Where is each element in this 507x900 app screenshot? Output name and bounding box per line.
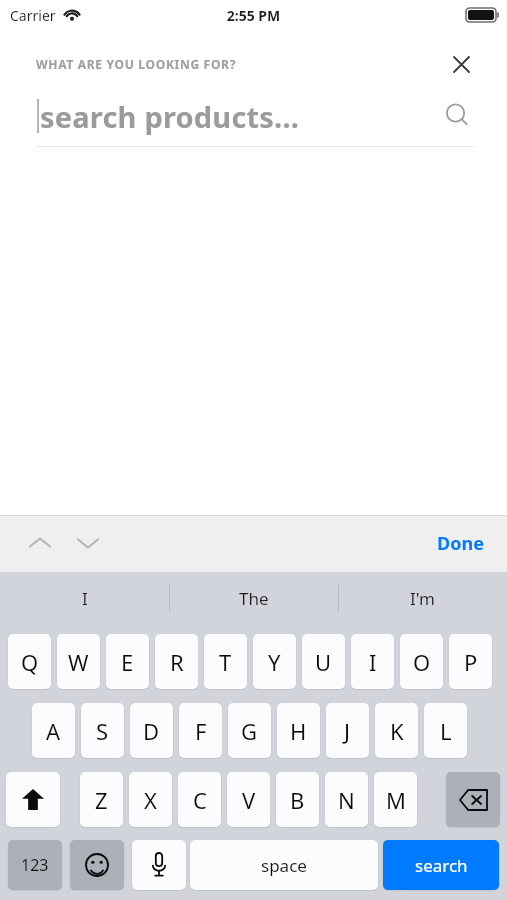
button[interactable]: I bbox=[0, 572, 169, 625]
staticText: E bbox=[121, 647, 134, 677]
button[interactable]: Next field bbox=[68, 523, 108, 563]
staticText: V bbox=[242, 785, 256, 815]
button[interactable]: F bbox=[179, 703, 222, 758]
button[interactable]: Close bbox=[443, 46, 479, 82]
staticText: T bbox=[219, 647, 232, 677]
button[interactable]: Search bbox=[438, 96, 476, 134]
button[interactable]: Backspace bbox=[446, 772, 500, 827]
button[interactable]: Emoji bbox=[70, 840, 124, 890]
button[interactable]: search bbox=[383, 840, 499, 890]
button[interactable]: S bbox=[81, 703, 124, 758]
button[interactable]: X bbox=[129, 772, 172, 827]
staticText: Carrier bbox=[10, 6, 56, 25]
button[interactable]: O bbox=[400, 634, 443, 689]
staticText: I'm bbox=[410, 587, 435, 610]
staticText: search products... bbox=[40, 97, 300, 136]
button[interactable]: T bbox=[204, 634, 247, 689]
staticText: O bbox=[413, 647, 431, 677]
staticText: W bbox=[68, 647, 89, 677]
staticText: Q bbox=[21, 647, 39, 677]
button[interactable]: I'm bbox=[338, 572, 507, 625]
staticText: N bbox=[338, 785, 355, 815]
button[interactable]: Previous field bbox=[20, 523, 60, 563]
button[interactable]: J bbox=[326, 703, 369, 758]
button[interactable]: A bbox=[32, 703, 75, 758]
staticText: R bbox=[170, 647, 184, 677]
button[interactable]: The bbox=[169, 572, 338, 625]
staticText: Done bbox=[437, 531, 484, 556]
button[interactable]: H bbox=[277, 703, 320, 758]
button[interactable]: space bbox=[190, 840, 378, 890]
staticText: D bbox=[143, 716, 160, 746]
staticText: I bbox=[369, 647, 377, 677]
staticText: A bbox=[46, 716, 61, 746]
staticText: X bbox=[144, 785, 157, 815]
button[interactable]: R bbox=[155, 634, 198, 689]
staticText: I bbox=[82, 587, 88, 610]
staticText: 2:55 PM bbox=[0, 6, 507, 25]
button[interactable]: Done bbox=[424, 523, 496, 563]
staticText: B bbox=[290, 785, 305, 815]
button[interactable]: U bbox=[302, 634, 345, 689]
staticText: H bbox=[290, 716, 307, 746]
staticText: Y bbox=[268, 647, 281, 677]
staticText: U bbox=[315, 647, 332, 677]
button[interactable]: V bbox=[227, 772, 270, 827]
button[interactable]: Dictation bbox=[132, 840, 186, 890]
button[interactable]: Y bbox=[253, 634, 296, 689]
staticText: G bbox=[241, 716, 258, 746]
button[interactable]: D bbox=[130, 703, 173, 758]
button[interactable]: N bbox=[325, 772, 368, 827]
button[interactable]: Q bbox=[8, 634, 51, 689]
button[interactable]: E bbox=[106, 634, 149, 689]
button[interactable]: Shift bbox=[6, 772, 60, 827]
staticText: 123 bbox=[21, 854, 49, 876]
button[interactable]: W bbox=[57, 634, 100, 689]
staticText: J bbox=[344, 716, 351, 746]
staticText: search bbox=[415, 854, 468, 877]
staticText: K bbox=[390, 716, 404, 746]
staticText: C bbox=[193, 785, 207, 815]
button[interactable]: P bbox=[449, 634, 492, 689]
button[interactable]: B bbox=[276, 772, 319, 827]
staticText: Z bbox=[95, 785, 108, 815]
staticText: P bbox=[464, 647, 478, 677]
staticText: WHAT ARE YOU LOOKING FOR? bbox=[36, 56, 237, 72]
button[interactable]: Z bbox=[80, 772, 123, 827]
staticText: space bbox=[261, 854, 307, 877]
button[interactable]: C bbox=[178, 772, 221, 827]
button[interactable]: L bbox=[424, 703, 467, 758]
staticText: L bbox=[440, 716, 452, 746]
button[interactable]: 123 bbox=[8, 840, 62, 890]
staticText: S bbox=[96, 716, 109, 746]
staticText: M bbox=[386, 785, 406, 815]
staticText: The bbox=[239, 587, 269, 610]
staticText: F bbox=[195, 716, 207, 746]
button[interactable]: G bbox=[228, 703, 271, 758]
button[interactable]: K bbox=[375, 703, 418, 758]
button[interactable]: M bbox=[374, 772, 417, 827]
button[interactable]: I bbox=[351, 634, 394, 689]
